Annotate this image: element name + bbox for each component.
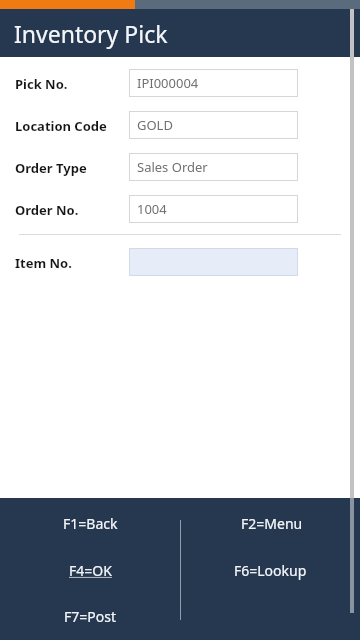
staticText: Order No. (15, 201, 79, 219)
staticText: F7=Post (64, 607, 116, 626)
staticText: F2=Menu (241, 514, 303, 533)
button[interactable]: F1=Back (30, 509, 150, 537)
staticText: 1004 (137, 200, 167, 218)
staticText: Order Type (15, 159, 87, 177)
button[interactable] (129, 248, 298, 276)
staticText: Pick No. (15, 75, 68, 93)
staticText: Location Code (15, 117, 107, 135)
staticText: F1=Back (63, 514, 118, 533)
button[interactable]: F7=Post (30, 602, 150, 630)
staticText: Inventory Pick (14, 18, 168, 49)
button[interactable]: F4=OK (30, 556, 150, 584)
button[interactable]: Sales Order (129, 153, 298, 181)
button[interactable]: 1004 (129, 195, 298, 223)
staticText: F6=Lookup (234, 561, 307, 580)
staticText: F4=OK (69, 561, 112, 580)
button[interactable]: F6=Lookup (210, 556, 330, 584)
button[interactable]: F2=Menu (212, 509, 332, 537)
button[interactable]: IPI000004 (129, 69, 298, 97)
button[interactable]: GOLD (129, 111, 298, 139)
staticText: Item No. (15, 254, 72, 272)
staticText: IPI000004 (137, 74, 199, 92)
staticText: Sales Order (137, 158, 208, 176)
staticText: GOLD (137, 116, 173, 134)
